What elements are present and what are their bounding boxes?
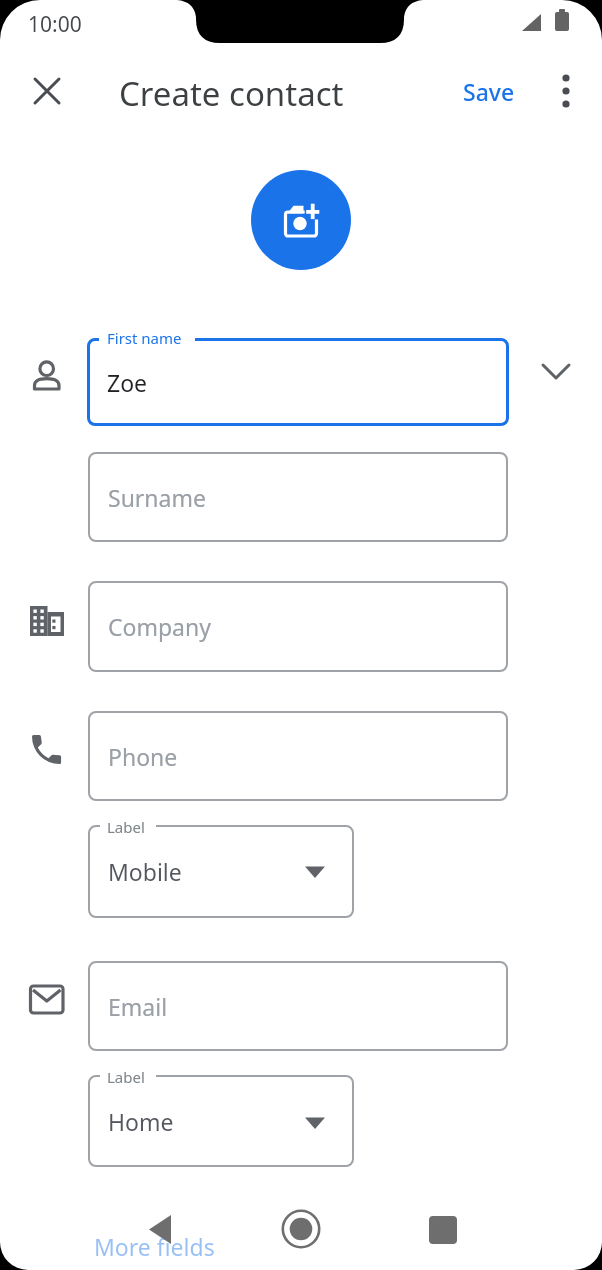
button[interactable]: More fields	[94, 1230, 224, 1262]
staticText: Email	[108, 991, 168, 1022]
staticText: Label	[107, 1067, 145, 1087]
button[interactable]	[547, 69, 585, 113]
button[interactable]	[131, 1207, 189, 1253]
button[interactable]	[272, 1199, 330, 1259]
button[interactable]	[533, 352, 579, 392]
staticText: Company	[108, 611, 211, 642]
staticText: Home	[108, 1106, 174, 1137]
staticText: Create contact	[119, 71, 344, 111]
button[interactable]	[88, 825, 354, 918]
button[interactable]: Save	[448, 69, 530, 113]
staticText: More fields	[94, 1231, 215, 1262]
button[interactable]	[88, 452, 508, 542]
button[interactable]	[88, 1075, 354, 1167]
staticText: Label	[107, 817, 145, 837]
button[interactable]	[88, 961, 508, 1051]
staticText: 10:00	[28, 10, 82, 39]
button[interactable]	[27, 71, 67, 111]
button[interactable]	[88, 711, 508, 801]
staticText: Save	[463, 76, 515, 107]
staticText: Zoe	[107, 367, 148, 398]
button[interactable]	[88, 581, 508, 672]
button[interactable]	[87, 338, 509, 426]
staticText: First name	[107, 328, 182, 348]
staticText: Surname	[108, 482, 206, 513]
button[interactable]	[414, 1207, 472, 1253]
button[interactable]	[251, 170, 351, 270]
staticText: Mobile	[108, 856, 182, 887]
staticText: Phone	[108, 741, 178, 772]
